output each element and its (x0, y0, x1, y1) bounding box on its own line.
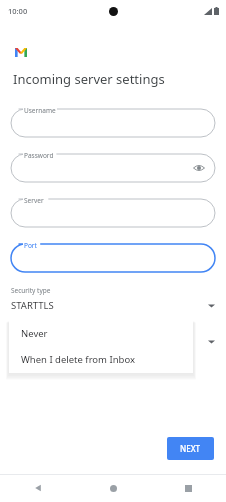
staticText: Delete emails from server (11, 325, 90, 334)
button[interactable]: Never (9, 320, 193, 346)
staticText: When I delete from Inbox (21, 353, 135, 366)
staticText: Security type (11, 286, 51, 295)
button[interactable]: Security type (11, 286, 215, 312)
button[interactable]: Home (76, 474, 151, 502)
button[interactable]: When I delete from Inbox (9, 346, 193, 373)
button[interactable]: Recent apps (151, 474, 226, 502)
staticText: Password (24, 151, 54, 160)
button[interactable]: Delete emails from server (11, 325, 215, 345)
button[interactable]: Port (11, 238, 215, 272)
staticText: Username (24, 106, 56, 115)
staticText: STARTTLS (11, 299, 54, 312)
button[interactable]: Show password (191, 160, 207, 176)
button[interactable]: Back (0, 474, 76, 502)
button[interactable]: Server (11, 193, 215, 227)
staticText: 10:00 (8, 6, 28, 16)
staticText: Incoming server settings (13, 70, 165, 88)
button[interactable]: Username (11, 103, 215, 137)
button[interactable]: NEXT (167, 437, 214, 460)
staticText: Never (21, 327, 48, 340)
staticText: Port (24, 241, 37, 250)
button[interactable]: Password (11, 148, 215, 182)
staticText: Server (24, 196, 44, 205)
staticText: NEXT (180, 443, 201, 454)
